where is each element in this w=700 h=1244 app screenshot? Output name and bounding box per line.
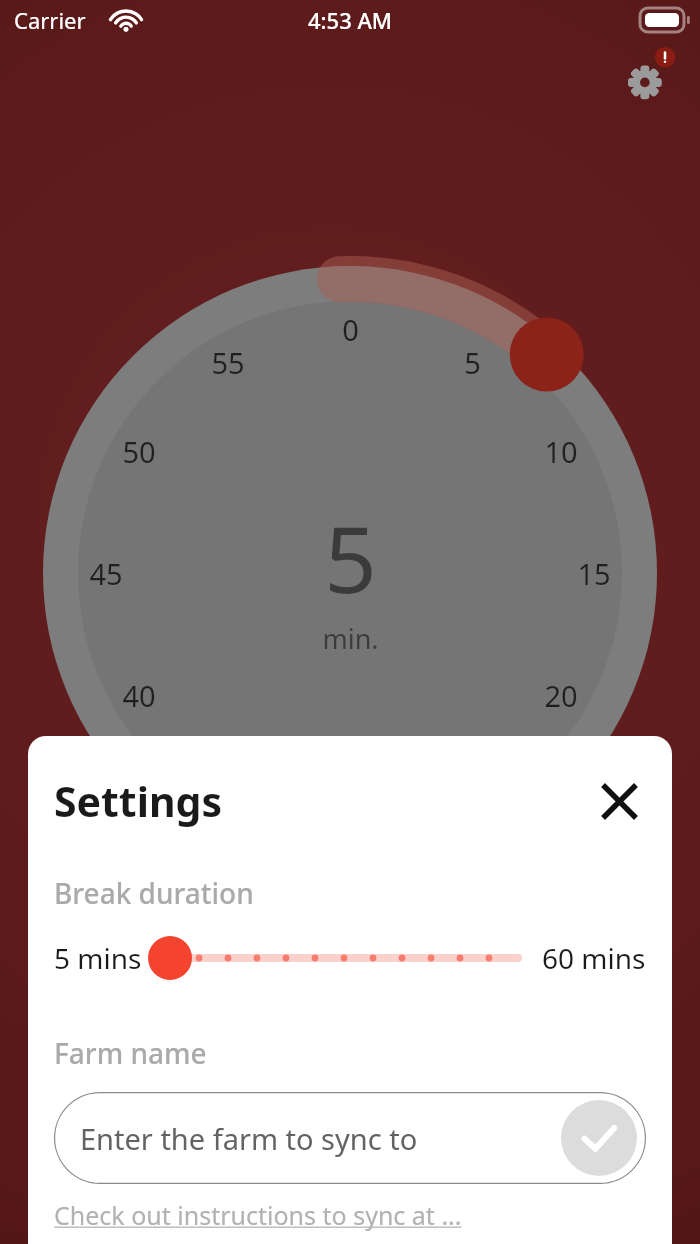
staticText: 0 (342, 310, 359, 349)
staticText: 50 (122, 432, 156, 471)
staticText: 55 (211, 343, 245, 382)
staticText: 20 (544, 676, 578, 715)
button[interactable]: Confirm farm name (561, 1100, 637, 1176)
staticText: Break duration (54, 874, 254, 912)
staticText: Carrier (14, 5, 86, 35)
staticText: 10 (544, 432, 578, 471)
staticText: 4:53 AM (308, 5, 393, 35)
button[interactable]: Settings (612, 44, 674, 106)
staticText: Farm name (54, 1034, 207, 1072)
staticText: 35 (211, 765, 245, 804)
staticText: 5 (464, 343, 481, 382)
button[interactable]: Enter the farm to sync to (54, 1092, 646, 1184)
button[interactable]: Check out instructions to sync at ... (54, 1198, 462, 1232)
staticText: 45 (89, 554, 123, 593)
button[interactable]: Close (592, 774, 646, 828)
staticText: Enter the farm to sync to (80, 1119, 418, 1158)
staticText: 40 (122, 676, 156, 715)
staticText: 5 (324, 495, 377, 620)
staticText: Settings (54, 773, 592, 829)
button[interactable] (142, 932, 542, 984)
staticText: 60 mins (542, 939, 646, 977)
staticText: Check out instructions to sync at ... (54, 1198, 462, 1232)
staticText: min. (322, 620, 379, 657)
staticText: 5 mins (54, 939, 142, 977)
staticText: 15 (577, 554, 611, 593)
